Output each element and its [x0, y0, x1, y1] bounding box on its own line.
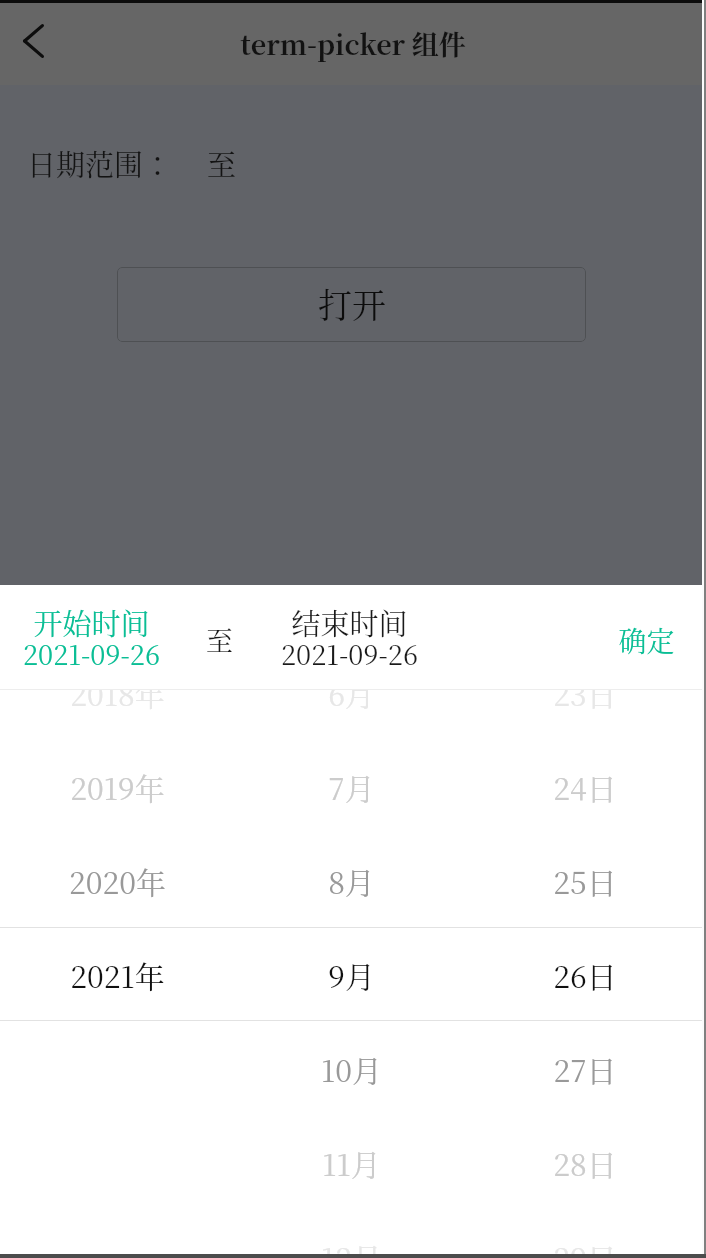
button[interactable]: 2021年	[0, 927, 234, 1021]
button[interactable]: 2020年	[0, 833, 234, 927]
staticText: term-picker 组件	[240, 24, 466, 63]
staticText: 日期范围： 至	[27, 143, 236, 185]
staticText: 2018年	[70, 690, 165, 714]
button[interactable]: 2019年	[0, 739, 234, 833]
button[interactable]: 打开	[117, 267, 586, 342]
staticText: 2021年	[70, 953, 165, 996]
staticText: 27日	[553, 1047, 617, 1090]
staticText: 2021-09-26	[281, 634, 418, 673]
staticText: 2021-09-26	[23, 634, 160, 673]
button[interactable]: 确定	[580, 585, 706, 690]
staticText: 结束时间	[291, 602, 408, 644]
staticText: 26日	[553, 953, 617, 996]
staticText: 11月	[322, 1141, 381, 1184]
staticText: 29日	[553, 1235, 617, 1258]
staticText: 至	[206, 620, 233, 659]
staticText: 打开	[318, 279, 386, 328]
staticText: 7月	[328, 765, 375, 808]
button[interactable]: 26日	[468, 927, 702, 1021]
staticText: 2019年	[70, 765, 165, 808]
staticText: 8月	[328, 859, 375, 902]
button[interactable]: 2018年	[0, 690, 234, 739]
button[interactable]: 23日	[468, 690, 702, 739]
button[interactable]: 29日	[468, 1209, 702, 1258]
staticText: 12月	[321, 1235, 382, 1258]
staticText: 25日	[553, 859, 617, 902]
button[interactable]: Back	[9, 0, 57, 82]
button[interactable]: 结束时间	[258, 585, 441, 690]
button[interactable]: 9月	[234, 927, 468, 1021]
staticText: 9月	[328, 953, 375, 996]
staticText: 28日	[553, 1141, 617, 1184]
button[interactable]: 12月	[234, 1209, 468, 1258]
button[interactable]: 11月	[234, 1115, 468, 1209]
button[interactable]: 24日	[468, 739, 702, 833]
button[interactable]: 8月	[234, 833, 468, 927]
staticText: 开始时间	[33, 602, 150, 644]
staticText: 23日	[553, 690, 617, 714]
staticText: 确定	[618, 620, 675, 660]
button[interactable]: 开始时间	[0, 585, 182, 690]
staticText: 6月	[328, 690, 375, 714]
button[interactable]: 25日	[468, 833, 702, 927]
button[interactable]: 28日	[468, 1115, 702, 1209]
staticText: 10月	[321, 1047, 382, 1090]
staticText: 2020年	[69, 859, 166, 902]
button[interactable]: 10月	[234, 1021, 468, 1115]
button[interactable]: 27日	[468, 1021, 702, 1115]
button[interactable]: 7月	[234, 739, 468, 833]
staticText: 24日	[553, 765, 617, 808]
